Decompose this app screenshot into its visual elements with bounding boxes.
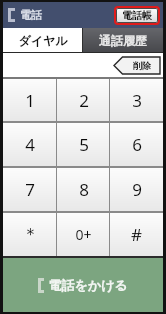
button[interactable]: 3 — [110, 79, 163, 121]
button[interactable]: 通話履歴 — [83, 28, 163, 52]
staticText: ダイヤル — [18, 33, 68, 48]
button[interactable]: ＊ — [3, 213, 57, 256]
button[interactable]: 0+ — [57, 213, 110, 256]
staticText: 電話 — [20, 8, 42, 22]
staticText: 8 — [79, 178, 89, 201]
button[interactable]: 1 — [3, 79, 57, 121]
staticText: 削除 — [133, 60, 151, 71]
staticText: 通話履歴 — [99, 33, 147, 48]
staticText: 電話帳 — [122, 9, 152, 22]
button[interactable]: 8 — [57, 168, 110, 211]
button[interactable]: 4 — [3, 123, 57, 166]
staticText: 5 — [79, 133, 89, 156]
button[interactable]: 7 — [3, 168, 57, 211]
button[interactable]: 電話をかける — [3, 258, 163, 312]
staticText: 0+ — [75, 225, 92, 244]
staticText: ＊ — [22, 224, 39, 245]
staticText: 7 — [25, 178, 35, 201]
button[interactable]: 9 — [110, 168, 163, 211]
staticText: 1 — [25, 89, 35, 112]
button[interactable]: 5 — [57, 123, 110, 166]
staticText: # — [131, 223, 142, 246]
button[interactable]: # — [110, 213, 163, 256]
staticText: 6 — [132, 133, 142, 156]
button[interactable]: 6 — [110, 123, 163, 166]
staticText: 9 — [132, 178, 142, 201]
staticText: 2 — [79, 89, 89, 112]
button[interactable]: 電話帳 — [116, 8, 158, 23]
staticText: 3 — [132, 89, 142, 112]
button[interactable]: 2 — [57, 79, 110, 121]
button[interactable]: 削除 — [114, 57, 160, 74]
button[interactable]: ダイヤル — [3, 28, 82, 52]
staticText: 4 — [25, 133, 35, 156]
staticText: 電話をかける — [48, 277, 128, 293]
